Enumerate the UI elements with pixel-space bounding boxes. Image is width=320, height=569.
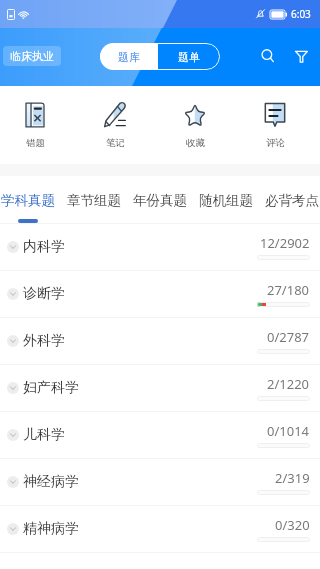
button[interactable]: 题单 xyxy=(158,43,220,70)
staticText: 评论 xyxy=(266,137,285,149)
staticText: 儿科学 xyxy=(23,426,65,444)
staticText: 0/320 xyxy=(275,516,310,534)
button[interactable]: 诊断学 xyxy=(0,271,320,317)
staticText: 随机组题 xyxy=(199,192,253,209)
button[interactable]: 收藏 xyxy=(155,86,235,164)
staticText: 临床执业 xyxy=(10,49,54,63)
button[interactable]: 随机组题 xyxy=(199,176,253,224)
staticText: 外科学 xyxy=(23,332,65,350)
button[interactable]: 学科真题 xyxy=(1,176,55,224)
staticText: 章节组题 xyxy=(67,192,121,209)
staticText: 2/319 xyxy=(275,469,310,487)
button[interactable]: 内科学 xyxy=(0,224,320,270)
staticText: 内科学 xyxy=(23,238,65,256)
button[interactable]: Search xyxy=(253,41,283,71)
staticText: 0/2787 xyxy=(267,328,310,346)
staticText: 2/1220 xyxy=(267,375,310,393)
staticText: 6:03 xyxy=(291,7,311,21)
staticText: 妇产科学 xyxy=(23,379,79,397)
staticText: 笔记 xyxy=(106,137,125,149)
staticText: 收藏 xyxy=(186,137,205,149)
button[interactable]: 错题 xyxy=(0,86,75,164)
button[interactable]: 妇产科学 xyxy=(0,365,320,411)
button[interactable]: 儿科学 xyxy=(0,412,320,458)
staticText: 年份真题 xyxy=(133,192,187,209)
staticText: 学科真题 xyxy=(1,192,55,209)
staticText: 12/2902 xyxy=(260,234,310,252)
staticText: 题单 xyxy=(178,50,200,64)
button[interactable]: 笔记 xyxy=(75,86,155,164)
button[interactable]: 必背考点 xyxy=(265,176,319,224)
staticText: 必背考点 xyxy=(265,192,319,209)
button[interactable]: 评论 xyxy=(235,86,315,164)
button[interactable]: 外科学 xyxy=(0,318,320,364)
staticText: 诊断学 xyxy=(23,285,65,303)
staticText: 精神病学 xyxy=(23,520,79,538)
button[interactable]: 精神病学 xyxy=(0,506,320,552)
button[interactable]: Filter xyxy=(286,41,316,71)
staticText: 错题 xyxy=(26,137,45,149)
button[interactable]: 临床执业 xyxy=(3,46,61,66)
button[interactable]: 题库 xyxy=(100,43,158,70)
staticText: 题库 xyxy=(118,50,140,64)
staticText: 0/1014 xyxy=(267,422,310,440)
button[interactable]: 章节组题 xyxy=(67,176,121,224)
button[interactable]: 年份真题 xyxy=(133,176,187,224)
staticText: 神经病学 xyxy=(23,473,79,491)
staticText: 27/180 xyxy=(267,281,310,299)
button[interactable]: 神经病学 xyxy=(0,459,320,505)
